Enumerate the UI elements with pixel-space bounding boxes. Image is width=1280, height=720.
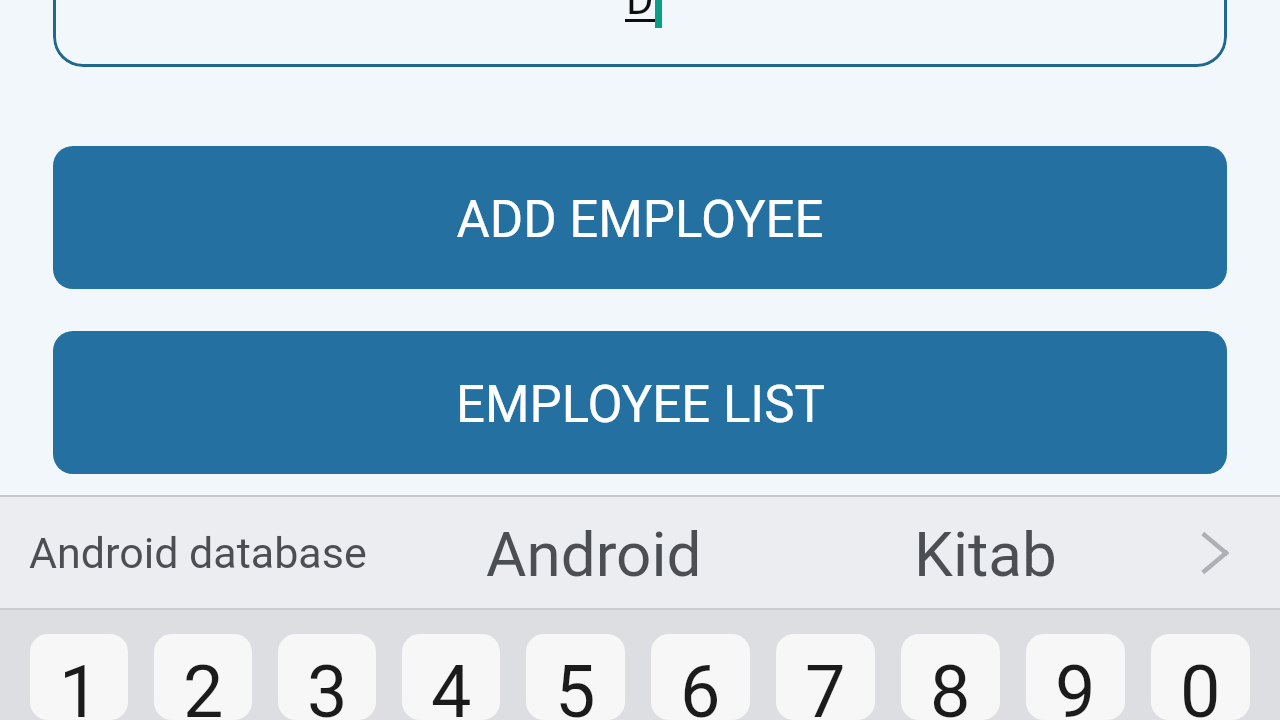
button[interactable]: 9 <box>1026 634 1125 720</box>
button[interactable]: 3 <box>278 634 376 720</box>
button[interactable]: EMPLOYEE LIST <box>53 331 1227 474</box>
staticText: 4 <box>431 650 472 720</box>
button[interactable]: More suggestions <box>1156 495 1256 610</box>
button[interactable] <box>53 0 1227 67</box>
staticText: 0 <box>1180 650 1221 720</box>
button[interactable]: 5 <box>526 634 625 720</box>
button[interactable]: 0 <box>1151 634 1250 720</box>
button[interactable]: Kitab <box>771 495 1200 610</box>
staticText: 2 <box>183 650 224 720</box>
staticText: Android database <box>29 528 367 578</box>
staticText: Android <box>486 518 702 591</box>
staticText: EMPLOYEE LIST <box>456 375 825 435</box>
button[interactable]: 2 <box>154 634 252 720</box>
staticText: 3 <box>307 650 348 720</box>
button[interactable]: 8 <box>901 634 1000 720</box>
button[interactable]: Android <box>420 495 771 610</box>
staticText: 5 <box>555 650 596 720</box>
staticText: 6 <box>680 650 721 720</box>
staticText: ADD EMPLOYEE <box>456 190 824 250</box>
staticText: 9 <box>1055 650 1096 720</box>
button[interactable]: 4 <box>402 634 500 720</box>
button[interactable]: 6 <box>651 634 750 720</box>
button[interactable]: 7 <box>776 634 875 720</box>
staticText: 8 <box>930 650 971 720</box>
staticText: D <box>626 0 654 24</box>
button[interactable]: ADD EMPLOYEE <box>53 146 1227 289</box>
staticText: 7 <box>805 650 846 720</box>
button[interactable]: 1 <box>30 634 128 720</box>
button[interactable]: Android database <box>0 495 420 610</box>
staticText: Kitab <box>914 518 1057 591</box>
staticText: 1 <box>59 650 100 720</box>
